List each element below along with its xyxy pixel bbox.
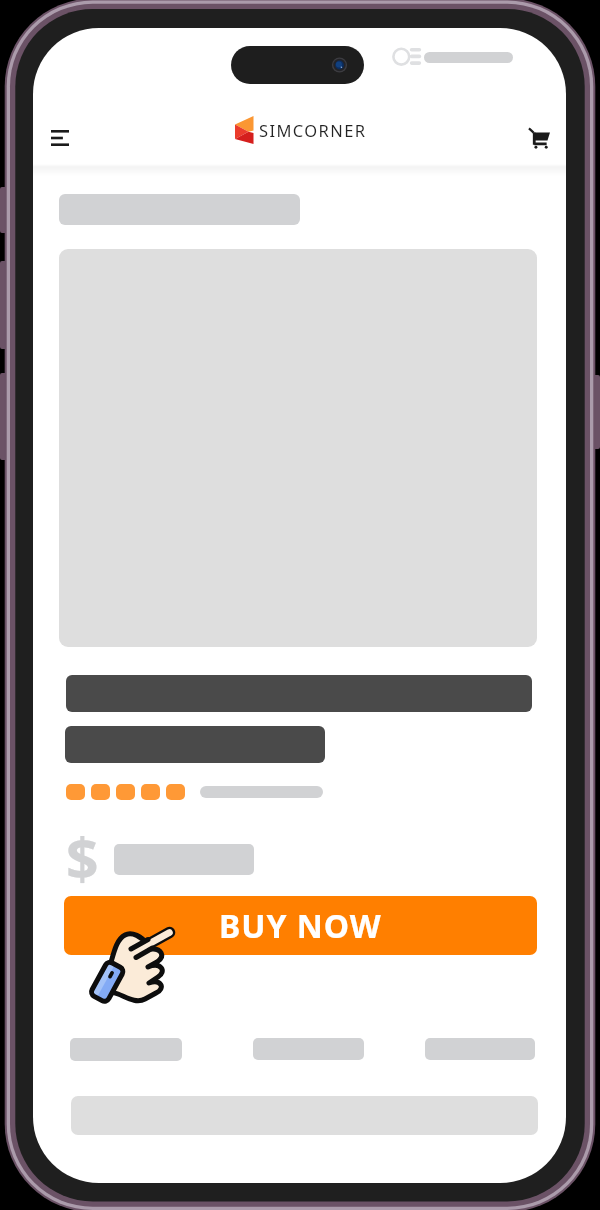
button[interactable]: BUY NOW	[64, 896, 537, 955]
button[interactable]: Cart	[523, 122, 555, 154]
staticText: BUY NOW	[219, 904, 382, 948]
staticText: $	[66, 819, 99, 889]
button[interactable]: Menu	[42, 122, 78, 154]
staticText: SIMCORNER	[259, 119, 367, 141]
